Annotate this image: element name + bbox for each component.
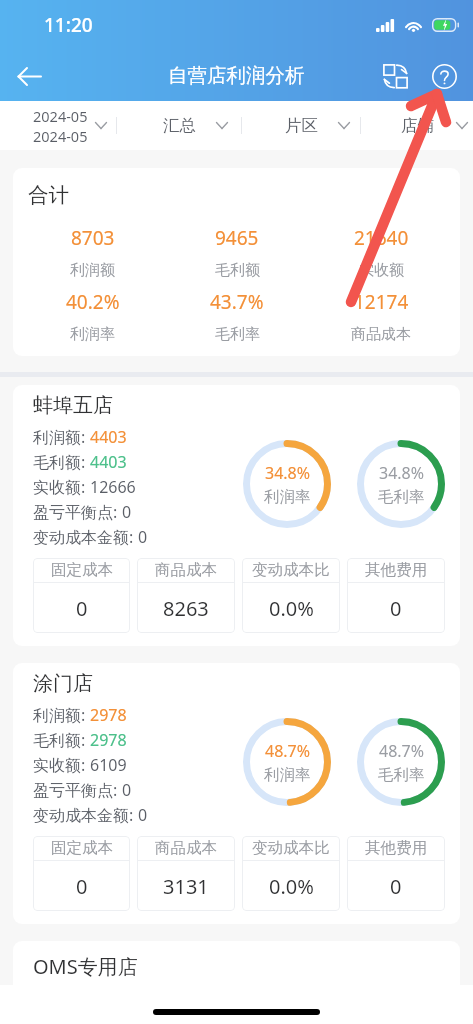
staticText: 其他费用 (365, 838, 427, 858)
staticText: 毛利额: (33, 729, 90, 751)
staticText: 2024-05 (33, 106, 88, 126)
staticText: 21640 (354, 225, 409, 251)
staticText: 蚌埠五店 (33, 393, 113, 418)
staticText: 变动成本金额: (33, 804, 138, 826)
staticText: 商品成本 (155, 560, 217, 580)
staticText: 毛利率 (378, 487, 425, 507)
staticText: 其他费用 (365, 560, 427, 580)
staticText: 合计 (28, 182, 69, 208)
staticText: 利润额: (33, 426, 90, 448)
staticText: 0.0% (269, 873, 314, 900)
button[interactable]: 变动成本比 (242, 558, 340, 633)
button[interactable]: 固定成本 (33, 558, 130, 633)
button[interactable]: 片区 (242, 101, 360, 150)
staticText: 0.0% (269, 595, 314, 622)
staticText: 0 (138, 804, 148, 826)
staticText: 11:20 (44, 12, 93, 38)
staticText: 2978 (90, 729, 127, 751)
staticText: 毛利额 (215, 261, 260, 280)
staticText: 店铺 (401, 115, 434, 136)
button[interactable]: 蚌埠五店 (13, 385, 460, 646)
staticText: 0 (76, 873, 88, 900)
staticText: 利润额 (70, 261, 115, 280)
staticText: 利润率 (70, 325, 115, 344)
staticText: 毛利率 (378, 765, 425, 785)
staticText: 43.7% (210, 289, 264, 315)
button[interactable]: 其他费用 (347, 558, 445, 633)
staticText: 利润率 (264, 487, 311, 507)
staticText: 6109 (90, 754, 127, 776)
button[interactable]: OMS专用店 (13, 941, 460, 1010)
staticText: 盈亏平衡点: (33, 779, 122, 801)
staticText: 12174 (354, 289, 409, 315)
staticText: 0 (138, 526, 148, 548)
staticText: 0 (122, 779, 132, 801)
staticText: 涂门店 (33, 671, 93, 696)
staticText: 12666 (90, 476, 136, 498)
staticText: 2978 (90, 704, 127, 726)
button[interactable]: 其他费用 (347, 836, 445, 911)
button[interactable]: 商品成本 (137, 836, 235, 911)
staticText: 利润率 (264, 765, 311, 785)
button[interactable]: 固定成本 (33, 836, 130, 911)
staticText: OMS专用店 (33, 953, 138, 980)
staticText: 实收额 (359, 261, 404, 280)
button[interactable]: 涂门店 (13, 663, 460, 924)
staticText: 34.8% (265, 462, 311, 484)
staticText: 片区 (285, 115, 318, 136)
button[interactable]: Help (427, 59, 461, 93)
staticText: 毛利率 (215, 325, 260, 344)
staticText: 0 (390, 873, 402, 900)
staticText: 4403 (90, 426, 127, 448)
staticText: 34.8% (379, 462, 425, 484)
staticText: 利润额: (33, 704, 90, 726)
staticText: 盈亏平衡点: (33, 501, 122, 523)
staticText: 2024-05 (33, 126, 88, 146)
staticText: 3131 (163, 873, 209, 900)
staticText: 0 (390, 595, 402, 622)
button[interactable]: 商品成本 (137, 558, 235, 633)
staticText: 8703 (71, 225, 115, 251)
staticText: 变动成本比 (252, 838, 330, 858)
staticText: 实收额: (33, 476, 90, 498)
staticText: 48.7% (265, 740, 311, 762)
button[interactable]: 变动成本比 (242, 836, 340, 911)
staticText: 0 (122, 501, 132, 523)
staticText: 48.7% (379, 740, 425, 762)
staticText: 变动成本比 (252, 560, 330, 580)
staticText: 商品成本 (155, 838, 217, 858)
button[interactable]: 合计 (13, 168, 460, 356)
staticText: 8263 (163, 595, 209, 622)
staticText: 4403 (90, 451, 127, 473)
staticText: 商品成本 (351, 325, 411, 344)
staticText: 9465 (215, 225, 259, 251)
button[interactable]: 汇总 (117, 101, 241, 150)
staticText: 40.2% (66, 289, 120, 315)
staticText: 毛利额: (33, 451, 90, 473)
button[interactable]: 2024-05 (0, 101, 116, 150)
button[interactable]: Back (11, 58, 47, 94)
staticText: 实收额: (33, 754, 90, 776)
staticText: 0 (76, 595, 88, 622)
staticText: 变动成本金额: (33, 526, 138, 548)
button[interactable]: 店铺 (361, 101, 473, 150)
staticText: 汇总 (163, 115, 196, 136)
button[interactable]: Fullscreen (378, 59, 412, 93)
staticText: 固定成本 (51, 560, 113, 580)
staticText: 自营店利润分析 (168, 63, 305, 88)
staticText: 固定成本 (51, 838, 113, 858)
